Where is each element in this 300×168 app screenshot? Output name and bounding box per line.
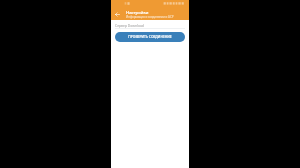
staticText: Сервер Download <box>115 23 144 28</box>
staticText: Настройки <box>126 10 149 16</box>
button[interactable]: Назад <box>111 8 123 20</box>
staticText: ПРОВЕРИТЬ СОЕДИНЕНИЕ <box>128 34 172 39</box>
staticText: Информация о соединении и ACP <box>126 15 174 19</box>
button[interactable]: ПРОВЕРИТЬ СОЕДИНЕНИЕ <box>115 32 185 42</box>
button[interactable]: Сервер Download <box>115 22 185 29</box>
